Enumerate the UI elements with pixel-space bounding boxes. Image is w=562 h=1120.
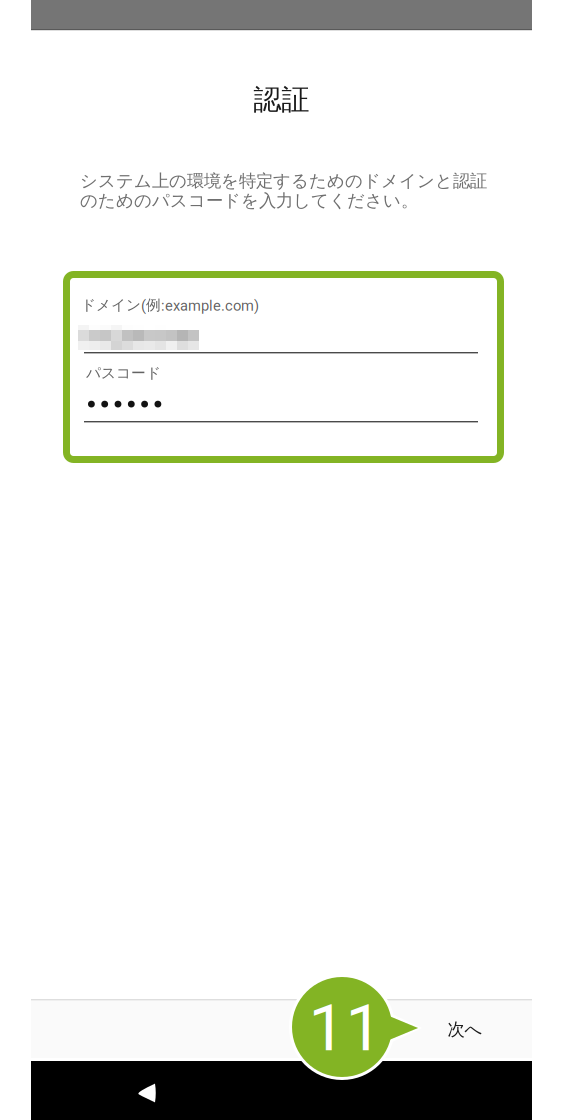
button[interactable]: Back: [127, 1072, 167, 1112]
staticText: 11: [308, 990, 382, 1066]
staticText: システム上の環境を特定するためのドメインと認証: [80, 170, 487, 192]
staticText: パスコード: [86, 364, 161, 382]
staticText: ドメイン(例:example.com): [81, 296, 259, 314]
staticText: のためのパスコードを入力してください。: [80, 190, 418, 212]
staticText: 認証: [253, 82, 309, 117]
button[interactable]: 次へ: [417, 1000, 513, 1059]
staticText: 次へ: [447, 1019, 482, 1040]
